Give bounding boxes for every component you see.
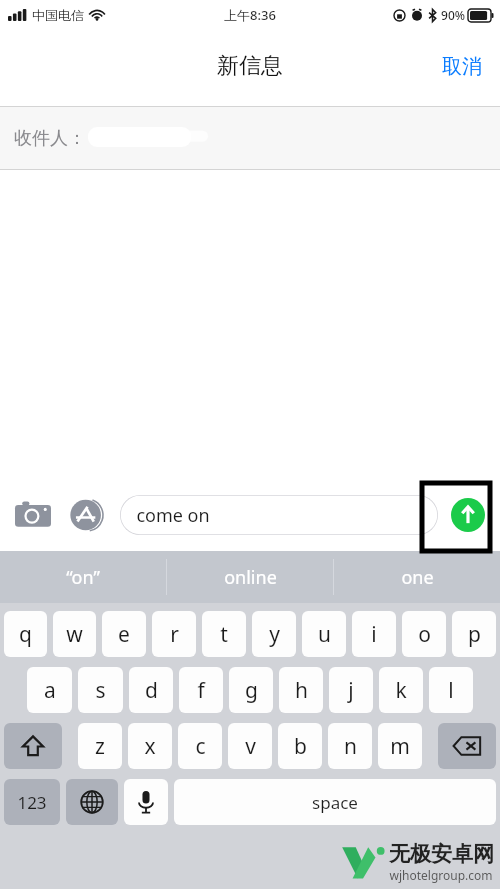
staticText: 123: [17, 791, 47, 814]
button[interactable]: space: [174, 779, 496, 825]
button[interactable]: Camera: [10, 492, 56, 538]
button[interactable]: Dictation: [124, 779, 168, 825]
staticText: m: [390, 732, 410, 761]
button[interactable]: h: [279, 667, 323, 713]
staticText: o: [418, 620, 431, 649]
button[interactable]: o: [402, 611, 446, 657]
staticText: 新信息: [217, 52, 283, 80]
staticText: space: [312, 791, 358, 814]
staticText: b: [294, 732, 307, 761]
staticText: 收件人：: [14, 127, 86, 150]
button[interactable]: App Store: [64, 492, 110, 538]
button[interactable]: a: [27, 667, 72, 713]
button[interactable]: x: [128, 723, 172, 769]
button[interactable]: m: [378, 723, 422, 769]
staticText: z: [95, 732, 105, 761]
button[interactable]: Shift: [4, 723, 62, 769]
staticText: online: [224, 565, 277, 590]
button[interactable]: t: [202, 611, 246, 657]
staticText: e: [118, 620, 130, 649]
staticText: l: [448, 676, 454, 705]
staticText: t: [220, 620, 228, 649]
staticText: q: [19, 620, 32, 649]
staticText: c: [195, 732, 206, 761]
staticText: x: [144, 732, 156, 761]
staticText: j: [348, 676, 354, 705]
staticText: come on: [136, 503, 210, 528]
button[interactable]: Change keyboard: [66, 779, 118, 825]
staticText: y: [269, 620, 280, 649]
button[interactable]: d: [129, 667, 173, 713]
staticText: “on”: [66, 565, 100, 590]
button[interactable]: v: [228, 723, 272, 769]
button[interactable]: g: [229, 667, 273, 713]
button[interactable]: r: [152, 611, 196, 657]
staticText: w: [66, 620, 83, 649]
staticText: 无极安卓网: [389, 841, 494, 867]
button[interactable]: come on: [120, 495, 438, 535]
button[interactable]: s: [78, 667, 123, 713]
button[interactable]: q: [4, 611, 47, 657]
button[interactable]: 收件人：: [0, 107, 500, 169]
button[interactable]: w: [53, 611, 96, 657]
button[interactable]: f: [179, 667, 223, 713]
staticText: 上午8:36: [224, 6, 276, 24]
button[interactable]: u: [302, 611, 346, 657]
staticText: a: [44, 676, 56, 705]
staticText: s: [95, 676, 106, 705]
staticText: i: [371, 620, 377, 649]
button[interactable]: n: [328, 723, 372, 769]
button[interactable]: Send: [446, 493, 490, 537]
button[interactable]: one: [334, 551, 500, 603]
button[interactable]: k: [379, 667, 423, 713]
button[interactable]: p: [452, 611, 496, 657]
staticText: u: [318, 620, 331, 649]
button[interactable]: Backspace: [438, 723, 496, 769]
staticText: f: [197, 676, 205, 705]
staticText: r: [170, 620, 179, 649]
button[interactable]: i: [352, 611, 396, 657]
button[interactable]: 123: [4, 779, 60, 825]
button[interactable]: l: [429, 667, 473, 713]
staticText: k: [395, 676, 407, 705]
staticText: d: [145, 676, 158, 705]
button[interactable]: c: [178, 723, 222, 769]
staticText: h: [295, 676, 308, 705]
button[interactable]: 取消: [430, 48, 494, 85]
staticText: p: [468, 620, 481, 649]
staticText: one: [401, 565, 434, 590]
button[interactable]: b: [278, 723, 322, 769]
button[interactable]: e: [102, 611, 146, 657]
staticText: g: [245, 676, 258, 705]
staticText: v: [245, 732, 256, 761]
staticText: 取消: [442, 54, 482, 79]
button[interactable]: y: [252, 611, 296, 657]
button[interactable]: online: [167, 551, 333, 603]
staticText: n: [344, 732, 357, 761]
button[interactable]: j: [329, 667, 373, 713]
staticText: 中国电信: [32, 7, 84, 23]
staticText: 90%: [441, 7, 465, 23]
button[interactable]: z: [78, 723, 122, 769]
staticText: wjhotelgroup.com: [389, 867, 493, 883]
button[interactable]: “on”: [0, 551, 166, 603]
